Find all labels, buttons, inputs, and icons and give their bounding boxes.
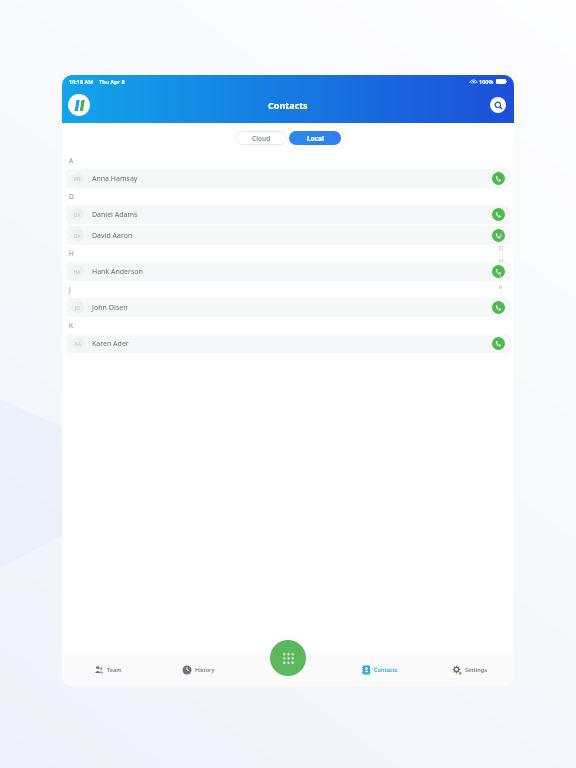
button[interactable]: D [496, 241, 506, 254]
button[interactable]: Team [62, 653, 153, 686]
staticText: Contacts [268, 99, 308, 111]
button[interactable]: Settings [424, 653, 514, 686]
staticText: Daniel Adams [92, 210, 138, 220]
staticText: David Aaron [92, 231, 133, 241]
staticText: H [499, 257, 504, 264]
button[interactable]: A [496, 228, 506, 241]
button[interactable]: Call Anna Hamsay [492, 172, 505, 185]
staticText: KA [75, 341, 81, 347]
staticText: K [69, 321, 74, 330]
staticText: Cloud [252, 134, 271, 143]
staticText: Hank Anderson [92, 267, 143, 277]
button[interactable]: KA [66, 334, 510, 353]
button[interactable]: Cloud [235, 131, 287, 145]
staticText: Local [307, 134, 324, 143]
button[interactable]: Call John Olsen [492, 301, 505, 314]
staticText: History [195, 666, 215, 673]
staticText: 100% [479, 78, 494, 85]
button[interactable]: H [496, 254, 506, 267]
staticText: DA [74, 212, 81, 218]
staticText: J [500, 270, 502, 277]
staticText: D [69, 192, 74, 201]
staticText: A [69, 156, 74, 165]
staticText: K [499, 283, 503, 290]
button[interactable]: Dialpad [270, 640, 306, 676]
button[interactable]: K [496, 280, 506, 293]
button[interactable]: Menu [68, 94, 90, 116]
staticText: D [499, 244, 504, 251]
staticText: Team [107, 666, 122, 673]
staticText: Anna Hamsay [92, 174, 138, 184]
staticText: Thu Apr 8 [99, 78, 125, 85]
button[interactable]: J [496, 267, 506, 280]
staticText: AN [74, 176, 81, 182]
staticText: J [69, 285, 71, 294]
button[interactable]: DA [66, 226, 510, 245]
staticText: A [499, 231, 503, 238]
button[interactable]: Contacts [334, 653, 424, 686]
staticText: DA [74, 233, 81, 239]
button[interactable]: JO [66, 298, 510, 317]
button[interactable]: HA [66, 262, 510, 281]
staticText: John Olsen [92, 303, 128, 313]
staticText: HA [74, 269, 81, 275]
button[interactable]: DA [66, 205, 510, 224]
button[interactable]: AN [66, 169, 510, 188]
button[interactable]: Call Hank Anderson [492, 265, 505, 278]
button[interactable]: Call Karen Ader [492, 337, 505, 350]
button[interactable]: Call Daniel Adams [492, 208, 505, 221]
button[interactable]: Call David Aaron [492, 229, 505, 242]
staticText: H [69, 249, 74, 258]
staticText: JO [75, 305, 80, 311]
button[interactable]: History [153, 653, 244, 686]
staticText: Contacts [374, 666, 398, 673]
button[interactable]: Local [289, 131, 341, 145]
staticText: Karen Ader [92, 339, 129, 349]
staticText: 10:18 AM [69, 78, 94, 85]
staticText: Settings [465, 666, 487, 673]
button[interactable]: Search [490, 97, 506, 113]
